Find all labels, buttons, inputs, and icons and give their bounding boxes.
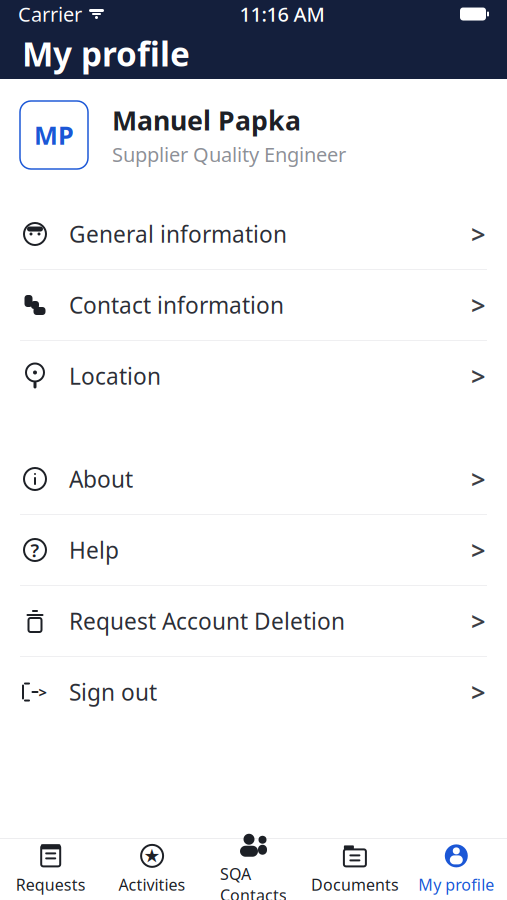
staticText: >: [471, 217, 485, 251]
staticText: ?: [30, 538, 39, 562]
button[interactable]: >: [0, 657, 507, 727]
staticText: Supplier Quality Engineer: [112, 141, 346, 167]
staticText: >: [471, 462, 485, 496]
staticText: >: [38, 682, 46, 702]
staticText: >: [471, 604, 485, 638]
staticText: MP: [34, 118, 74, 152]
staticText: Documents: [311, 874, 399, 895]
staticText: Manuel Papka: [112, 102, 301, 138]
staticText: About: [69, 464, 133, 494]
button[interactable]: Request Account Deletion: [0, 586, 507, 656]
staticText: My profile: [22, 31, 190, 76]
button[interactable]: SQA Contacts: [203, 839, 304, 900]
staticText: ★: [144, 845, 161, 866]
button[interactable]: Contact information: [0, 270, 507, 340]
button[interactable]: Documents: [304, 839, 406, 900]
button[interactable]: ★: [101, 839, 203, 900]
staticText: Sign out: [69, 677, 157, 707]
staticText: >: [471, 359, 485, 393]
staticText: Location: [69, 361, 161, 391]
button[interactable]: About: [0, 444, 507, 514]
staticText: SQA Contacts: [220, 863, 287, 900]
button[interactable]: My profile: [406, 839, 507, 900]
staticText: Requests: [16, 874, 86, 895]
staticText: My profile: [418, 874, 494, 895]
staticText: Carrier: [18, 1, 82, 27]
staticText: >: [471, 675, 485, 709]
staticText: Activities: [119, 874, 186, 895]
staticText: >: [471, 288, 485, 322]
button[interactable]: Location: [0, 341, 507, 411]
staticText: Contact information: [69, 290, 284, 320]
staticText: >: [471, 533, 485, 567]
staticText: 11:16 AM: [239, 1, 324, 27]
button[interactable]: ?: [0, 515, 507, 585]
staticText: General information: [69, 219, 287, 249]
button[interactable]: Requests: [0, 839, 101, 900]
staticText: Request Account Deletion: [69, 606, 345, 636]
button[interactable]: General information: [0, 199, 507, 269]
staticText: Help: [69, 535, 119, 565]
